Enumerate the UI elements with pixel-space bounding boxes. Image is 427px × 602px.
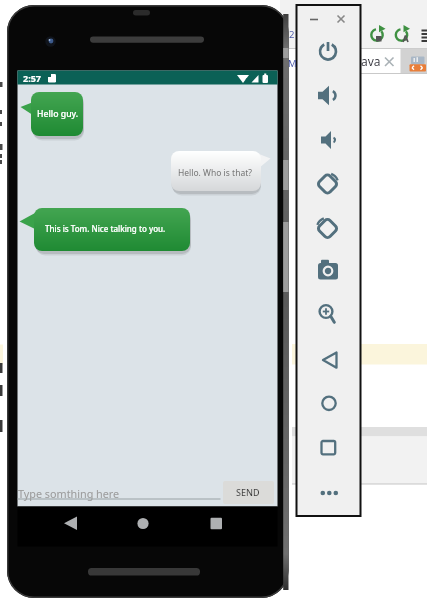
- button[interactable]: [310, 81, 347, 109]
- staticText: 2:57: [23, 72, 41, 84]
- button[interactable]: [310, 257, 347, 285]
- staticText: Hello. Who is that?: [178, 167, 252, 179]
- button[interactable]: SEND: [223, 481, 274, 504]
- button[interactable]: [310, 479, 347, 507]
- button[interactable]: [206, 510, 234, 536]
- button[interactable]: [310, 37, 347, 65]
- staticText: Type somthing here: [18, 486, 120, 501]
- button[interactable]: [133, 510, 161, 536]
- staticText: ava: [361, 53, 381, 69]
- button[interactable]: [310, 170, 347, 198]
- button[interactable]: [310, 433, 347, 461]
- button[interactable]: [310, 300, 347, 328]
- staticText: M: [288, 57, 297, 70]
- button[interactable]: [310, 346, 347, 374]
- button[interactable]: [310, 214, 347, 242]
- button[interactable]: [310, 126, 347, 154]
- staticText: SEND: [236, 486, 260, 498]
- button[interactable]: [56, 510, 84, 536]
- staticText: 2: [289, 28, 295, 41]
- button[interactable]: [310, 389, 347, 417]
- staticText: Hello guy.: [37, 108, 79, 120]
- staticText: This is Tom. Nice talking to you.: [45, 223, 166, 234]
